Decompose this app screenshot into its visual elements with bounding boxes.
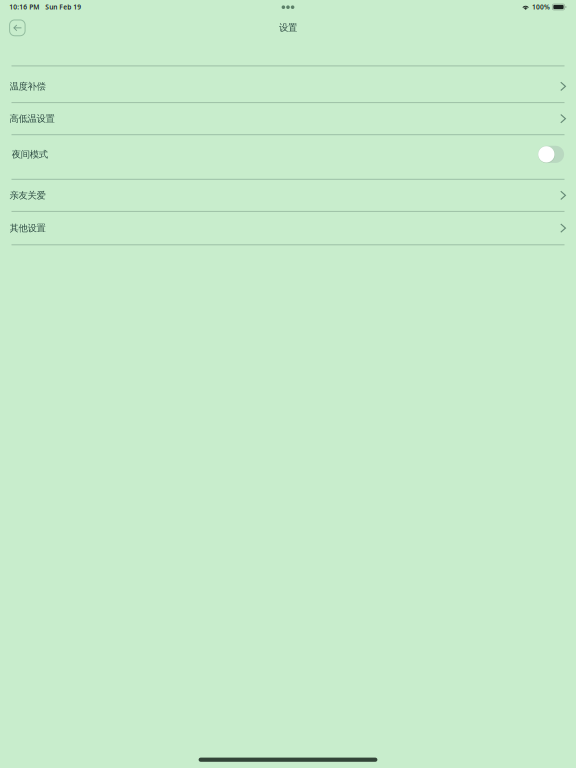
button[interactable]: 亲友关爱 [0,180,576,211]
staticText: 高低温设置 [9,113,54,124]
staticText: Sun Feb 19 [45,3,81,11]
staticText: 10:16 PM [9,3,39,11]
button[interactable]: Back [10,20,25,36]
staticText: 亲友关爱 [9,190,45,201]
staticText: 夜间模式 [12,149,48,160]
staticText: 设置 [279,22,297,33]
button[interactable]: 其他设置 [0,212,576,244]
staticText: 100% [532,3,550,11]
staticText: 温度补偿 [9,81,45,92]
staticText: 其他设置 [9,222,45,234]
button[interactable]: 高低温设置 [0,103,576,134]
button[interactable]: 夜间模式 toggle [538,146,564,163]
button[interactable]: 温度补偿 [0,66,576,102]
